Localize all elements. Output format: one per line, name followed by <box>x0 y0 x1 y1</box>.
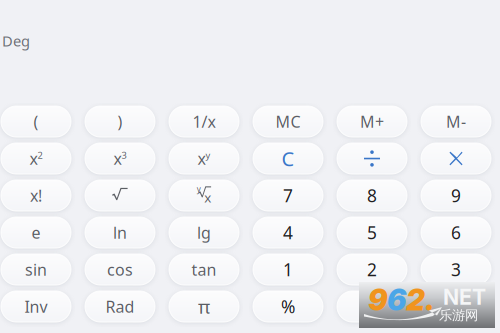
staticText: 乐游网 <box>439 307 478 323</box>
staticText: C <box>281 145 294 172</box>
staticText: 1/x <box>192 111 215 132</box>
staticText: 1 <box>283 258 293 281</box>
button[interactable]: 9 <box>421 180 491 211</box>
button[interactable]: x! <box>1 180 71 211</box>
staticText: e <box>31 222 40 243</box>
staticText: 9 <box>451 184 461 207</box>
button[interactable]: 0 <box>337 291 407 322</box>
button[interactable]: Rad <box>85 291 155 322</box>
staticText: 0 <box>367 295 377 318</box>
button[interactable]: cos <box>85 254 155 285</box>
staticText: ln <box>113 222 127 243</box>
button[interactable]: ( <box>1 106 71 137</box>
button[interactable]: C <box>253 143 323 174</box>
button[interactable]: π <box>169 291 239 322</box>
staticText: tan <box>191 259 216 280</box>
button[interactable]: 2 <box>337 254 407 285</box>
staticText: ( <box>33 111 38 132</box>
button[interactable]: tan <box>169 254 239 285</box>
staticText: xy <box>197 148 210 169</box>
button[interactable]: M+ <box>337 106 407 137</box>
staticText: cos <box>107 259 133 280</box>
staticText: 7 <box>283 184 293 207</box>
staticText: Rad <box>105 296 134 317</box>
staticText: x2 <box>29 148 42 169</box>
button[interactable]: x2 <box>1 143 71 174</box>
button[interactable]: e <box>1 217 71 248</box>
staticText: M- <box>446 111 466 132</box>
staticText: 3 <box>451 258 461 281</box>
button[interactable]: divide <box>337 143 407 174</box>
button[interactable]: 1/x <box>169 106 239 137</box>
staticText: 5 <box>367 221 377 244</box>
button[interactable]: . <box>421 291 491 322</box>
staticText: 6 <box>451 221 461 244</box>
button[interactable]: 4 <box>253 217 323 248</box>
button[interactable]: ) <box>85 106 155 137</box>
staticText: π <box>198 294 210 319</box>
staticText: . <box>425 282 435 317</box>
button[interactable]: 3 <box>421 254 491 285</box>
staticText: Deg <box>2 31 30 50</box>
staticText: sin <box>25 259 47 280</box>
button[interactable]: 6 <box>421 217 491 248</box>
button[interactable]: % <box>253 291 323 322</box>
staticText: lg <box>197 222 211 243</box>
button[interactable]: lg <box>169 217 239 248</box>
staticText: Inv <box>24 296 47 317</box>
button[interactable]: cube root of x <box>169 180 239 211</box>
staticText: 8 <box>367 184 377 207</box>
staticText: y <box>197 184 201 194</box>
staticText: 2 <box>406 282 425 317</box>
button[interactable]: 1 <box>253 254 323 285</box>
staticText: x! <box>30 185 42 206</box>
button[interactable]: M- <box>421 106 491 137</box>
button[interactable]: Inv <box>1 291 71 322</box>
staticText: . <box>453 295 458 318</box>
button[interactable]: 5 <box>337 217 407 248</box>
button[interactable]: sin <box>1 254 71 285</box>
button[interactable]: MC <box>253 106 323 137</box>
button[interactable]: 7 <box>253 180 323 211</box>
staticText: x <box>204 188 211 206</box>
staticText: NET <box>443 284 486 310</box>
button[interactable]: 8 <box>337 180 407 211</box>
staticText: M+ <box>360 111 384 132</box>
button[interactable]: ln <box>85 217 155 248</box>
staticText: % <box>281 295 295 318</box>
staticText: 6 <box>387 282 406 317</box>
staticText: ) <box>117 111 122 132</box>
button[interactable]: square root <box>85 180 155 211</box>
staticText: 9 <box>368 282 387 317</box>
staticText: MC <box>275 111 300 132</box>
button[interactable]: x3 <box>85 143 155 174</box>
button[interactable]: multiply <box>421 143 491 174</box>
staticText: 2 <box>367 258 377 281</box>
staticText: 4 <box>283 221 293 244</box>
staticText: x3 <box>113 148 126 169</box>
button[interactable]: xy <box>169 143 239 174</box>
